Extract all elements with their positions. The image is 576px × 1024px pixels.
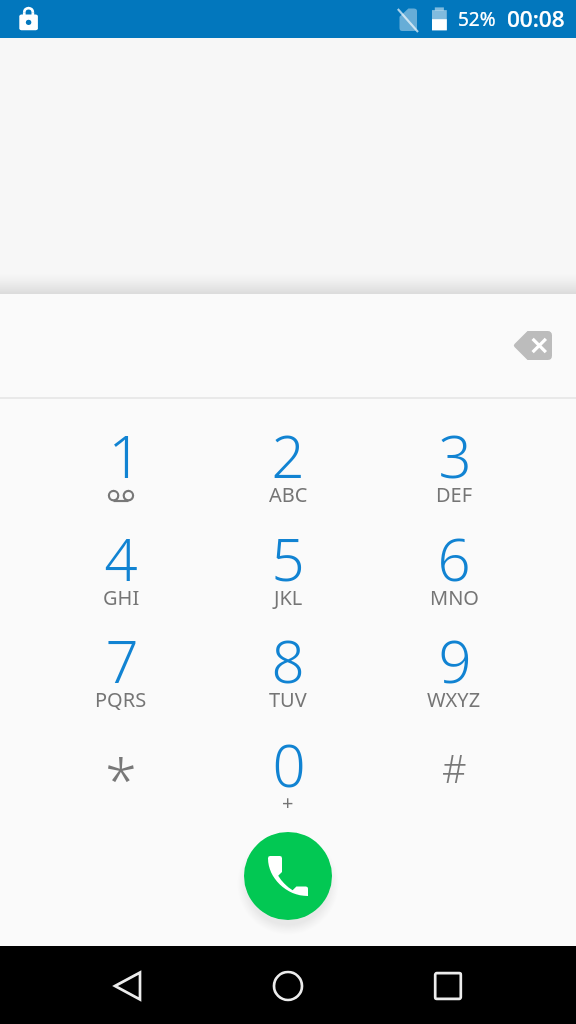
staticText: JKL [274,584,303,611]
staticText: 8 [271,621,305,700]
button[interactable]: Dial 1 [38,417,204,517]
staticText: GHI [103,584,140,611]
staticText: ABC [269,481,308,508]
staticText: DEF [436,481,473,508]
staticText: 00:08 [507,3,565,34]
staticText: 1 [108,416,142,495]
staticText: * [105,740,137,819]
button[interactable]: Backspace [502,315,562,375]
staticText: + [282,789,294,816]
button[interactable]: Dial 9 [371,622,537,722]
button[interactable]: Dial 5 [205,520,371,620]
button[interactable]: Dial 0 [205,726,371,826]
staticText: PQRS [95,686,147,713]
button[interactable]: Dial # [371,726,537,826]
button[interactable]: Home [256,954,320,1018]
button[interactable]: Dial 2 [205,417,371,517]
staticText: 4 [104,519,138,598]
staticText: 6 [437,519,471,598]
staticText: TUV [269,686,307,713]
button[interactable]: Dial 3 [371,417,537,517]
staticText: 7 [105,621,139,700]
staticText: WXYZ [427,686,481,713]
button[interactable]: Dial * [38,726,204,826]
button[interactable]: Back [96,954,160,1018]
button[interactable]: Dial 6 [371,520,537,620]
button[interactable]: Dial 4 [38,520,204,620]
staticText: 5 [271,519,305,598]
staticText: 3 [438,416,472,495]
staticText: 0 [272,725,306,804]
staticText: 2 [271,416,305,495]
button[interactable]: Dial 8 [205,622,371,722]
button[interactable]: Dial 7 [38,622,204,722]
staticText: 9 [438,621,472,700]
staticText: 52% [458,6,496,32]
button[interactable]: Recents [416,954,480,1018]
staticText: MNO [430,584,479,611]
staticText: # [442,742,467,794]
button[interactable]: Call [244,832,332,920]
